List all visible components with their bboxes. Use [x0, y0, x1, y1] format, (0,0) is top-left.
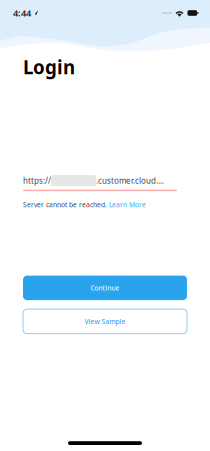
button[interactable]: Learn More [109, 200, 146, 209]
staticText: https:// [23, 175, 51, 186]
staticText: Login [23, 55, 75, 79]
staticText: Server cannot be reached. [23, 200, 109, 209]
staticText: .customer.cloud.... [96, 175, 164, 186]
staticText: View Sample [84, 317, 125, 326]
staticText: Learn More [109, 200, 146, 209]
button[interactable]: View Sample [23, 309, 187, 334]
staticText: 4:44 [13, 7, 31, 19]
staticText: Continue [90, 283, 119, 292]
button[interactable]: Continue [23, 276, 187, 300]
